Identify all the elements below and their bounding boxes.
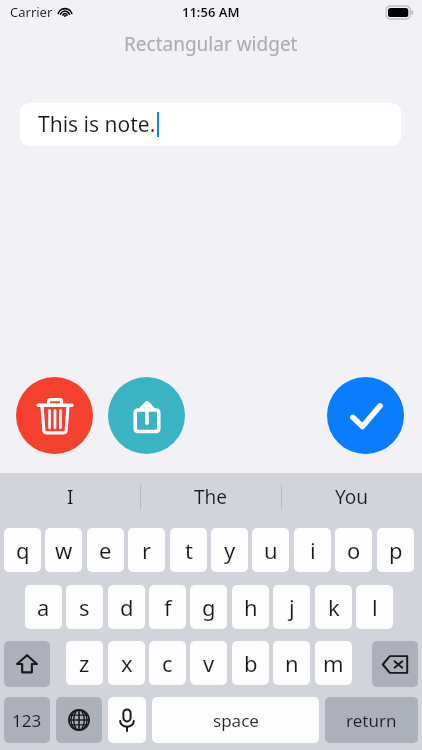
button[interactable]: I	[0, 473, 140, 520]
button[interactable]: l	[356, 585, 393, 629]
staticText: u	[264, 535, 278, 565]
button[interactable]: e	[87, 528, 124, 572]
button[interactable]: u	[252, 528, 289, 572]
button[interactable]: h	[232, 585, 269, 629]
button[interactable]: 123	[4, 697, 50, 743]
button[interactable]: i	[294, 528, 331, 572]
button[interactable]: Done	[327, 377, 404, 454]
button[interactable]: z	[66, 641, 103, 685]
staticText: d	[120, 592, 134, 622]
staticText: g	[202, 592, 216, 622]
staticText: a	[37, 592, 50, 622]
staticText: The	[194, 484, 228, 510]
button[interactable]: j	[273, 585, 310, 629]
button[interactable]: c	[149, 641, 186, 685]
staticText: I	[67, 484, 74, 510]
button[interactable]: b	[232, 641, 269, 685]
staticText: f	[164, 592, 172, 622]
staticText: m	[323, 648, 344, 678]
button[interactable]: return	[325, 697, 418, 743]
staticText: space	[213, 709, 259, 732]
staticText: s	[79, 592, 90, 622]
button[interactable]: o	[335, 528, 372, 572]
staticText: Carrier	[10, 3, 53, 21]
staticText: t	[185, 535, 193, 565]
button[interactable]: k	[315, 585, 352, 629]
button[interactable]: You	[282, 473, 422, 520]
button[interactable]: d	[108, 585, 145, 629]
staticText: w	[55, 535, 73, 565]
button[interactable]: p	[377, 528, 414, 572]
button[interactable]: f	[149, 585, 186, 629]
button[interactable]: t	[170, 528, 207, 572]
staticText: z	[79, 648, 90, 678]
button[interactable]: s	[66, 585, 103, 629]
staticText: l	[372, 592, 378, 622]
staticText: p	[389, 535, 403, 565]
staticText: Rectangular widget	[124, 31, 298, 57]
button[interactable]: n	[273, 641, 310, 685]
button[interactable]: r	[128, 528, 165, 572]
staticText: 123	[12, 709, 42, 732]
staticText: h	[244, 592, 258, 622]
staticText: x	[121, 648, 133, 678]
staticText: c	[162, 648, 173, 678]
button[interactable]: q	[4, 528, 41, 572]
button[interactable]: w	[45, 528, 82, 572]
button[interactable]: Key	[56, 697, 102, 743]
button[interactable]: space	[152, 697, 319, 743]
staticText: return	[346, 709, 397, 732]
button[interactable]: Key	[4, 641, 50, 687]
staticText: i	[310, 535, 316, 565]
button[interactable]: v	[190, 641, 227, 685]
button[interactable]: This is note.	[20, 103, 401, 146]
staticText: q	[16, 535, 30, 565]
button[interactable]: a	[25, 585, 62, 629]
button[interactable]: Delete	[16, 377, 93, 454]
staticText: y	[224, 535, 236, 565]
staticText: v	[203, 648, 215, 678]
button[interactable]: y	[211, 528, 248, 572]
button[interactable]: The	[141, 473, 281, 520]
staticText: k	[328, 592, 340, 622]
staticText: n	[285, 648, 299, 678]
staticText: j	[289, 592, 295, 622]
staticText: o	[347, 535, 361, 565]
button[interactable]: Dictate	[108, 697, 146, 743]
staticText: b	[244, 648, 258, 678]
button[interactable]: g	[190, 585, 227, 629]
staticText: e	[99, 535, 112, 565]
button[interactable]: x	[108, 641, 145, 685]
staticText: 11:56 AM	[182, 3, 240, 21]
button[interactable]: Share	[108, 377, 185, 454]
staticText: r	[142, 535, 152, 565]
staticText: You	[335, 484, 369, 510]
button[interactable]: m	[315, 641, 352, 685]
button[interactable]: Key	[372, 641, 418, 687]
staticText: This is note.	[38, 110, 156, 139]
